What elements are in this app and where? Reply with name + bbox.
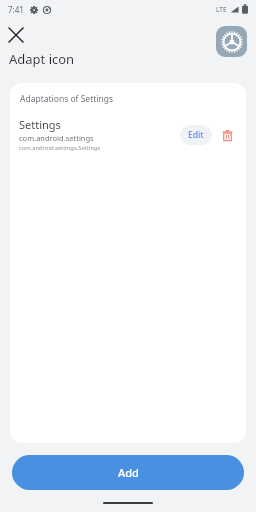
button[interactable]: Delete: [217, 125, 237, 145]
staticText: Edit: [188, 129, 204, 141]
button[interactable]: Settings app icon: [216, 26, 247, 57]
staticText: Adaptations of Settings: [20, 93, 114, 105]
staticText: Adapt icon: [9, 50, 75, 68]
button[interactable]: Edit: [180, 125, 212, 145]
staticText: com.android.settings: [19, 133, 94, 143]
staticText: LTE: [216, 5, 227, 14]
staticText: com.android.settings.Settings: [19, 144, 101, 152]
staticText: Add: [118, 465, 139, 480]
staticText: 7:41: [8, 4, 24, 15]
button[interactable]: Add: [12, 455, 244, 490]
staticText: Settings: [19, 117, 61, 132]
button[interactable]: Close: [3, 22, 29, 48]
